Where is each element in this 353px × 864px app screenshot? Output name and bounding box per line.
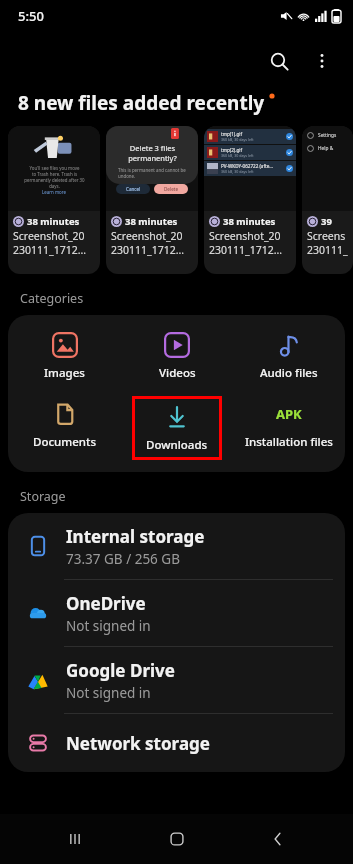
staticText: 5:50 <box>18 7 44 25</box>
staticText: Google Drive <box>66 659 175 682</box>
staticText: tmp(1).gif <box>221 131 242 137</box>
staticText: Audio files <box>260 365 318 381</box>
staticText: Delete 3 files permanently? <box>128 143 177 163</box>
staticText: 360 kB, 30 days left <box>221 137 254 142</box>
staticText: Network storage <box>66 732 210 755</box>
staticText: 8 new files added recently <box>18 90 265 116</box>
staticText: Screenshot_20 <box>13 229 85 243</box>
staticText: Learn more <box>42 189 66 195</box>
button[interactable]: Internal storage <box>8 513 345 579</box>
staticText: 230111_1712… <box>13 243 87 257</box>
button[interactable]: Documents <box>8 396 121 455</box>
button[interactable]: Home <box>150 814 204 864</box>
button[interactable]: Delete 3 files permanently? <box>106 126 198 274</box>
button[interactable]: You'll see files you move to Trash here.… <box>8 126 100 274</box>
button[interactable]: tmp(1).gif <box>204 126 296 274</box>
button[interactable]: Back <box>251 814 305 864</box>
button[interactable]: Network storage <box>8 714 345 772</box>
staticText: 230111_1712… <box>111 243 185 257</box>
staticText: 360 kB, 30 days left <box>221 153 254 158</box>
staticText: 38 minutes ago <box>125 215 193 228</box>
staticText: Not signed in <box>66 617 151 635</box>
staticText: Help & feedback <box>318 145 353 152</box>
button[interactable]: Search <box>257 39 301 83</box>
staticText: Installation files <box>245 434 333 450</box>
staticText: 39 minut <box>321 215 348 228</box>
staticText: Images <box>44 365 85 381</box>
staticText: PV-WKDY-062722 (afte… <box>221 163 273 169</box>
staticText: Internal storage <box>66 525 205 548</box>
staticText: Screenshot_20 <box>307 229 348 243</box>
staticText: Screenshot_20 <box>111 229 183 243</box>
button[interactable]: Recent apps <box>48 814 102 864</box>
staticText: Storage <box>20 488 66 505</box>
staticText: Not signed in <box>66 684 151 702</box>
staticText: 230111_1712… <box>209 243 283 257</box>
button[interactable]: More options <box>301 40 343 82</box>
staticText: 38 minutes ago <box>223 215 291 228</box>
staticText: This is permanent and cannot be undone. <box>118 167 186 179</box>
staticText: 360 kB, 30 days left <box>221 169 254 174</box>
staticText: Cancel <box>126 186 141 192</box>
staticText: APK <box>276 405 302 423</box>
staticText: 38 minutes ago <box>27 215 95 228</box>
staticText: Screenshot_20 <box>209 229 281 243</box>
staticText: OneDrive <box>66 592 146 615</box>
button[interactable]: Images <box>8 327 121 386</box>
staticText: Categories <box>20 290 84 307</box>
button[interactable]: APK <box>233 396 345 455</box>
staticText: You'll see files you move to Trash here.… <box>24 165 85 189</box>
button[interactable]: OneDrive <box>8 580 345 646</box>
staticText: Delete <box>164 186 178 192</box>
button[interactable]: Audio files <box>233 327 345 386</box>
staticText: 73.37 GB / 256 GB <box>66 550 180 568</box>
staticText: 230111_1712… <box>307 243 348 257</box>
button[interactable]: Videos <box>121 327 233 386</box>
button[interactable]: Settings <box>302 126 353 274</box>
button[interactable]: Downloads <box>135 399 219 457</box>
staticText: Downloads <box>146 437 208 453</box>
staticText: tmp(2).gif <box>221 147 242 153</box>
staticText: Videos <box>159 365 196 381</box>
staticText: Settings <box>318 132 337 139</box>
staticText: Documents <box>33 434 96 450</box>
button[interactable]: Google Drive <box>8 647 345 713</box>
